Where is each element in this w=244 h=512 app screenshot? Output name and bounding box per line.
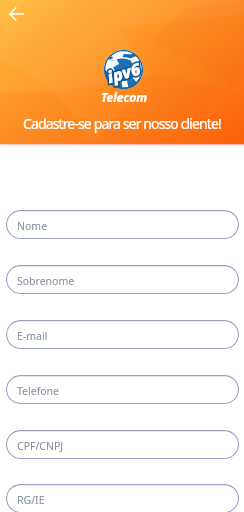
staticText: Cadastre-se para ser nosso cliente! [23,114,221,133]
button[interactable]: RG/IE [6,484,239,512]
staticText: Nome [17,219,48,233]
staticText: E-mail [17,329,48,343]
staticText: Telefone [17,384,60,398]
button[interactable]: E-mail [6,320,239,349]
button[interactable]: Back [2,0,30,28]
button[interactable]: Sobrenome [6,265,239,294]
staticText: RG/IE [17,493,45,507]
staticText: ipv6 [104,57,143,87]
button[interactable]: Telefone [6,375,239,404]
staticText: Telecom [101,89,148,105]
button[interactable]: CPF/CNPJ [6,430,239,459]
staticText: ipv6 [104,57,143,87]
staticText: Sobrenome [17,274,75,288]
button[interactable]: Nome [6,210,239,239]
staticText: CPF/CNPJ [17,439,64,453]
